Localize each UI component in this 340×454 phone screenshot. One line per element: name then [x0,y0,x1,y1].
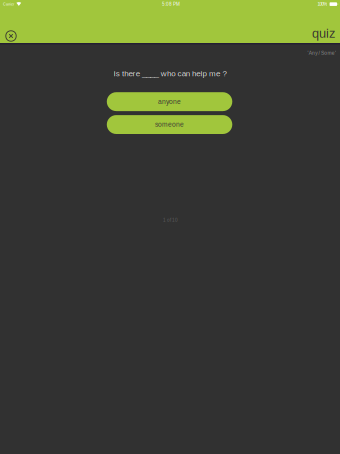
staticText: 100% [317,2,327,7]
staticText: Is there ____ who can help me ? [114,69,226,78]
staticText: someone [155,121,184,128]
button[interactable]: anyone [107,92,232,111]
staticText: 1 of 10 [163,218,178,223]
button[interactable]: Close quiz [0,26,22,46]
staticText: quiz [312,26,335,40]
staticText: Carrier [3,2,14,6]
staticText: 5:08 PM [162,2,180,7]
staticText: anyone [158,98,181,105]
staticText: 'Any / Some' [307,50,336,56]
button[interactable]: someone [107,115,232,134]
